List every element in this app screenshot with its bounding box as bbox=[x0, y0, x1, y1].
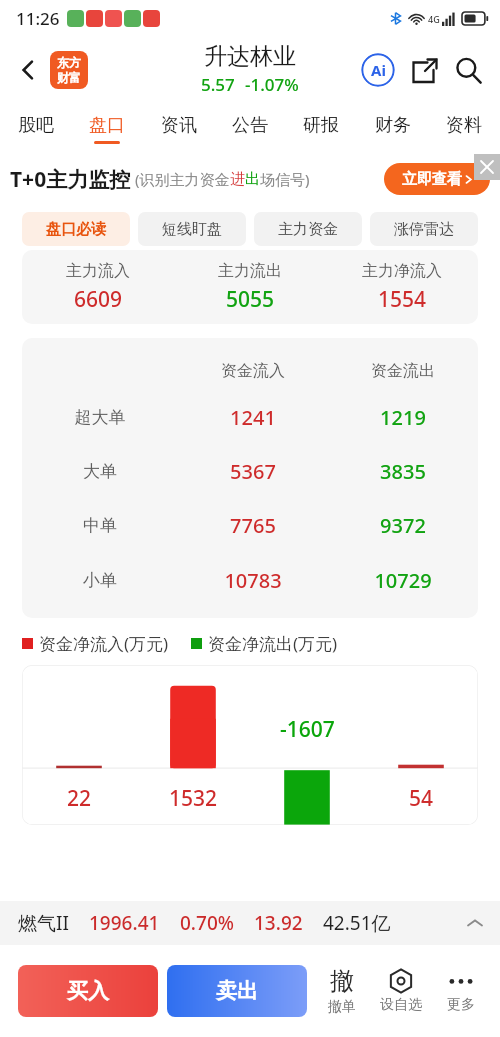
staticText: 22 bbox=[67, 784, 92, 813]
staticText: 5055 bbox=[226, 285, 275, 314]
staticText: 0.70% bbox=[180, 910, 234, 936]
staticText: 研报 bbox=[303, 114, 339, 137]
staticText: 更多 bbox=[447, 996, 475, 1014]
staticText: 小单 bbox=[22, 570, 178, 591]
staticText: 1219 bbox=[328, 404, 478, 431]
button[interactable]: 更多 bbox=[432, 968, 490, 1014]
staticText: 资金净流入(万元) bbox=[39, 632, 169, 655]
staticText: 主力净流入 bbox=[362, 261, 442, 281]
staticText: 资金流入 bbox=[178, 361, 328, 381]
staticText: 大单 bbox=[22, 461, 178, 482]
button[interactable]: Back bbox=[6, 48, 50, 92]
staticText: 短线盯盘 bbox=[162, 220, 222, 239]
staticText: 主力流入 bbox=[66, 261, 130, 281]
button[interactable]: 主力资金 bbox=[254, 212, 362, 246]
button[interactable]: 资料 bbox=[442, 114, 486, 144]
staticText: 10729 bbox=[328, 567, 478, 594]
staticText: 场信号) bbox=[260, 169, 310, 189]
button[interactable]: 研报 bbox=[299, 114, 343, 144]
staticText: 出 bbox=[245, 170, 260, 189]
staticText: T+0主力监控 bbox=[10, 165, 131, 194]
staticText: 13.92 bbox=[254, 910, 303, 936]
button[interactable]: 燃气II bbox=[0, 901, 500, 945]
staticText: 资金流出 bbox=[328, 361, 478, 381]
button[interactable]: AI assistant bbox=[358, 50, 398, 90]
staticText: -1.07% bbox=[245, 73, 299, 96]
button[interactable]: 买入 bbox=[18, 965, 158, 1017]
staticText: -1607 bbox=[280, 715, 335, 744]
staticText: 1532 bbox=[169, 784, 218, 813]
staticText: 5367 bbox=[178, 458, 328, 485]
staticText: 盘口 bbox=[89, 114, 125, 137]
button[interactable]: 财务 bbox=[371, 114, 415, 144]
staticText: 公告 bbox=[232, 114, 268, 137]
staticText: 5.57 bbox=[201, 73, 235, 96]
button[interactable]: 盘口必读 bbox=[22, 212, 130, 246]
staticText: 资料 bbox=[446, 114, 482, 137]
staticText: 主力流出 bbox=[218, 261, 282, 281]
button[interactable]: 立即查看 bbox=[384, 163, 490, 195]
button[interactable]: 涨停雷达 bbox=[370, 212, 478, 246]
button[interactable]: 盘口 bbox=[85, 114, 129, 144]
button[interactable]: 资讯 bbox=[157, 114, 201, 144]
button[interactable]: 撤 bbox=[314, 966, 370, 1016]
staticText: Ai bbox=[371, 60, 386, 80]
staticText: 3835 bbox=[328, 458, 478, 485]
button[interactable]: 卖出 bbox=[167, 965, 307, 1017]
staticText: 财务 bbox=[375, 114, 411, 137]
staticText: 1554 bbox=[378, 285, 427, 314]
staticText: 进 bbox=[230, 170, 245, 189]
button[interactable]: 公告 bbox=[228, 114, 272, 144]
staticText: (识别主力资金 bbox=[135, 169, 230, 189]
staticText: 东方 bbox=[57, 55, 81, 70]
button[interactable]: Share bbox=[404, 50, 444, 90]
staticText: 盘口必读 bbox=[46, 220, 106, 239]
staticText: 6609 bbox=[74, 285, 123, 314]
staticText: 1996.41 bbox=[89, 910, 160, 936]
button[interactable]: 设自选 bbox=[370, 968, 432, 1014]
staticText: 主力资金 bbox=[278, 220, 338, 239]
staticText: 资讯 bbox=[161, 114, 197, 137]
staticText: 资金净流出(万元) bbox=[208, 632, 338, 655]
staticText: 买入 bbox=[67, 978, 109, 1004]
staticText: 财富 bbox=[57, 70, 81, 85]
staticText: 撤单 bbox=[328, 998, 356, 1016]
staticText: 11:26 bbox=[16, 7, 60, 30]
staticText: 42.51亿 bbox=[323, 910, 391, 936]
staticText: 9372 bbox=[328, 512, 478, 539]
staticText: 设自选 bbox=[380, 996, 422, 1014]
staticText: 1241 bbox=[178, 404, 328, 431]
button[interactable]: East Money bbox=[50, 51, 88, 89]
button[interactable]: Close bbox=[474, 154, 500, 180]
staticText: 涨停雷达 bbox=[394, 220, 454, 239]
staticText: 立即查看 bbox=[402, 170, 462, 189]
staticText: 54 bbox=[409, 784, 434, 813]
staticText: 中单 bbox=[22, 515, 178, 536]
staticText: 撤 bbox=[330, 966, 354, 996]
button[interactable]: 短线盯盘 bbox=[138, 212, 246, 246]
staticText: 股吧 bbox=[18, 114, 54, 137]
staticText: 7765 bbox=[178, 512, 328, 539]
staticText: 超大单 bbox=[22, 407, 178, 428]
staticText: 升达林业 bbox=[204, 42, 296, 71]
button[interactable]: Search bbox=[448, 50, 488, 90]
button[interactable]: 股吧 bbox=[14, 114, 58, 144]
staticText: 4G bbox=[428, 13, 440, 25]
staticText: 燃气II bbox=[18, 910, 69, 936]
staticText: 10783 bbox=[178, 567, 328, 594]
staticText: 卖出 bbox=[216, 978, 258, 1004]
